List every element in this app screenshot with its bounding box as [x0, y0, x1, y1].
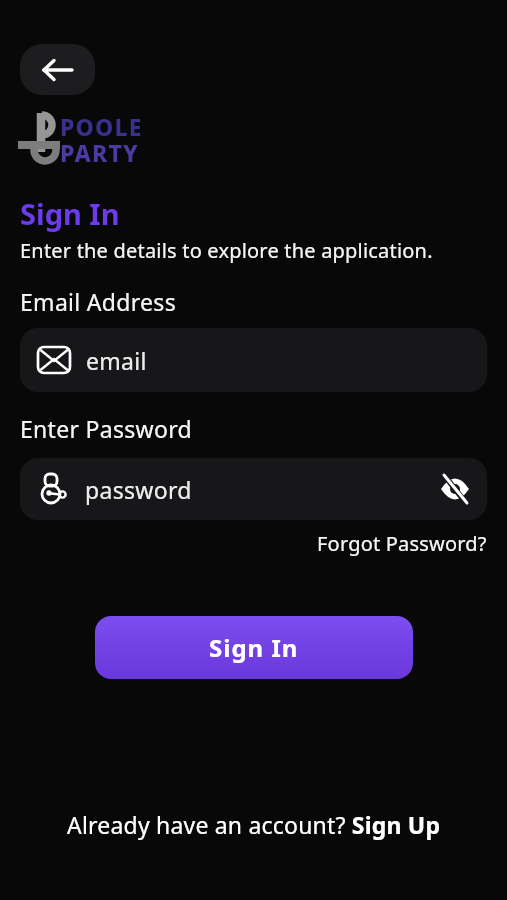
staticText: POOLE PARTY	[60, 111, 143, 169]
staticText: password	[85, 474, 441, 505]
staticText: email	[86, 345, 147, 376]
button[interactable]: Sign In	[95, 616, 413, 679]
staticText: Forgot Password?	[317, 530, 487, 557]
staticText: Sign In	[20, 194, 120, 233]
staticText: Sign In	[209, 631, 299, 664]
button[interactable]: password	[20, 458, 487, 520]
staticText: Enter Password	[20, 413, 192, 444]
button[interactable]	[20, 44, 95, 95]
staticText: Email Address	[20, 286, 176, 317]
staticText: Enter the details to explore the applica…	[20, 237, 433, 264]
staticText: Already have an account? Sign Up	[67, 809, 441, 840]
button[interactable]: Already have an account? Sign Up	[67, 809, 441, 840]
button[interactable]: Forgot Password?	[317, 530, 487, 557]
button[interactable]: email	[20, 328, 487, 392]
